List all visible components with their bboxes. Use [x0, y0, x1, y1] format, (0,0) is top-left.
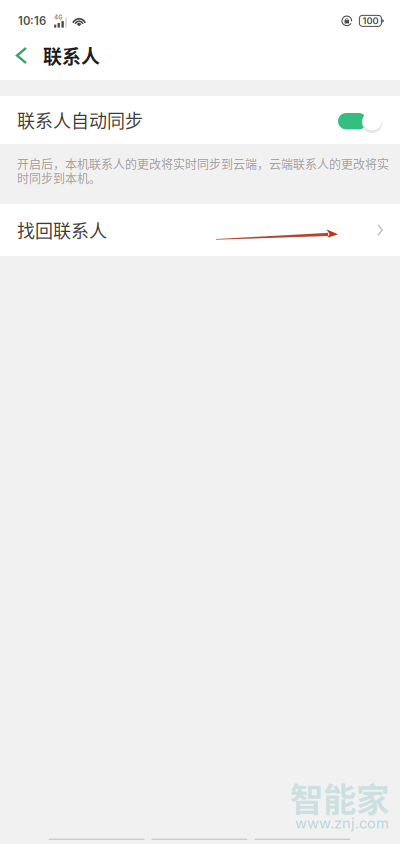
button[interactable]: 联系人自动同步 — [338, 103, 382, 137]
staticText: www.znj.com — [295, 814, 389, 832]
staticText: 联系人 — [43, 42, 100, 69]
button[interactable]: Recents — [251, 833, 354, 844]
staticText: 智能家 — [290, 773, 389, 821]
staticText: 联系人自动同步 — [17, 107, 143, 133]
button[interactable]: Back — [3, 31, 40, 80]
staticText: 开启后，本机联系人的更改将实时同步到云端，云端联系人的更改将实时同步到本机。 — [17, 155, 389, 187]
button[interactable]: 找回联系人 — [0, 204, 400, 256]
staticText: 4G — [54, 14, 62, 21]
button[interactable]: Back — [45, 833, 148, 844]
staticText: 100 — [362, 15, 378, 26]
button[interactable]: Home — [148, 833, 251, 844]
staticText: 找回联系人 — [17, 217, 107, 243]
staticText: 10:16 — [18, 14, 46, 28]
